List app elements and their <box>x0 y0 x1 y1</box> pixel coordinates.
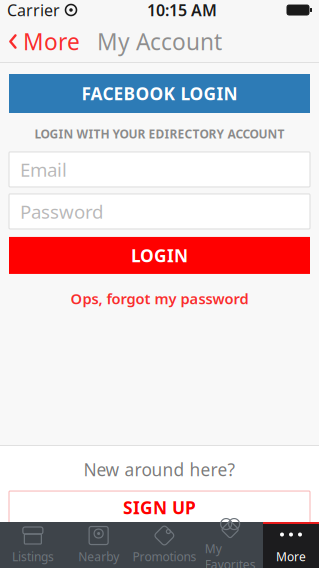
button[interactable]: Promotions <box>131 522 197 568</box>
staticText: More <box>276 548 306 564</box>
staticText: Promotions <box>132 548 196 564</box>
staticText: Carrier <box>7 0 60 21</box>
button[interactable]: SIGN UP <box>9 491 310 524</box>
staticText: Ops, forgot my password <box>70 289 248 308</box>
staticText: My Account <box>97 26 222 56</box>
button[interactable]: Listings <box>0 522 66 568</box>
button[interactable]: My Favorites <box>197 522 263 568</box>
staticText: My Favorites <box>205 541 256 568</box>
button[interactable]: More <box>0 20 80 62</box>
button[interactable]: FACEBOOK LOGIN <box>9 74 310 113</box>
staticText: More <box>23 26 80 56</box>
staticText: LOGIN <box>131 244 188 267</box>
staticText: Email <box>20 157 67 182</box>
staticText: FACEBOOK LOGIN <box>81 82 237 105</box>
staticText: Nearby <box>78 548 119 564</box>
staticText: SIGN UP <box>123 496 196 519</box>
staticText: New around here? <box>83 458 235 481</box>
button[interactable]: Ops, forgot my password <box>60 284 258 313</box>
button[interactable]: More <box>263 522 319 568</box>
button[interactable]: LOGIN <box>9 237 310 274</box>
staticText: LOGIN WITH YOUR EDIRECTORY ACCOUNT <box>34 126 284 142</box>
staticText: Listings <box>12 548 54 564</box>
staticText: Password <box>20 199 103 224</box>
button[interactable]: Nearby <box>66 522 132 568</box>
staticText: 10:15 AM <box>147 0 217 21</box>
